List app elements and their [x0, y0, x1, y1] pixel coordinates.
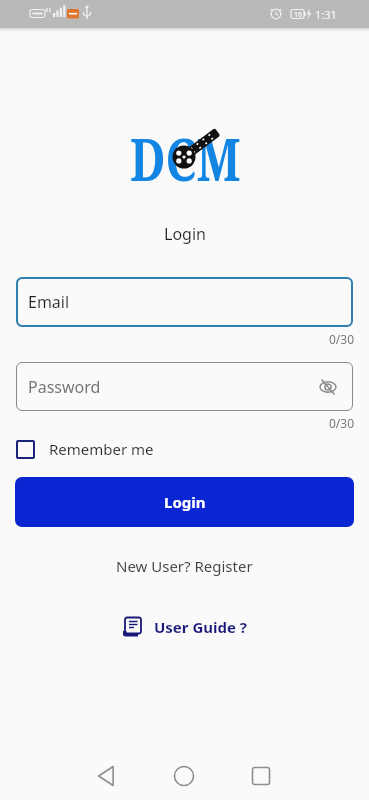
staticText: 0/30: [329, 415, 355, 431]
button[interactable]: Email: [16, 277, 353, 327]
staticText: New User? Register: [116, 556, 253, 576]
button[interactable]: New User? Register: [116, 556, 253, 576]
button[interactable]: [241, 756, 281, 796]
staticText: Remember me: [49, 439, 154, 459]
staticText: User Guide ?: [154, 617, 248, 637]
button[interactable]: [87, 756, 127, 796]
staticText: Email: [28, 291, 70, 313]
staticText: 0/30: [329, 331, 355, 347]
staticText: Login: [164, 223, 206, 245]
staticText: 1:31: [315, 7, 337, 22]
button[interactable]: User Guide ?: [122, 616, 248, 638]
staticText: DCM: [130, 119, 241, 183]
button[interactable]: [164, 756, 204, 796]
button[interactable]: Password: [16, 362, 353, 411]
staticText: Login: [164, 492, 206, 512]
button[interactable]: Remember me: [16, 439, 369, 459]
button[interactable]: Login: [15, 477, 354, 527]
staticText: 18: [294, 10, 303, 20]
staticText: Password: [28, 376, 101, 398]
